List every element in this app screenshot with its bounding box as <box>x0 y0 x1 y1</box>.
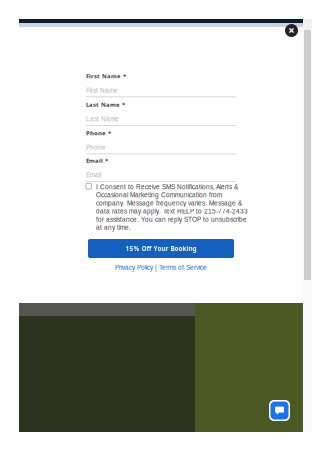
staticText: First Name * <box>86 72 126 80</box>
staticText: for assistance. You can reply STOP to un… <box>96 216 247 223</box>
button[interactable]: 15% Off Your Booking <box>88 239 234 258</box>
staticText: data rates may apply. Text HELP to 215-7… <box>96 208 248 215</box>
button[interactable]: Close <box>284 23 299 38</box>
staticText: Last Name * <box>86 100 125 108</box>
staticText: Privacy Policy <box>115 264 153 271</box>
staticText: Last Name <box>86 115 119 123</box>
staticText: I Consent to Receive SMS Notifications, … <box>96 183 238 191</box>
button[interactable]: Chat <box>269 400 290 421</box>
staticText: Email <box>86 171 101 179</box>
staticText: First Name <box>86 87 118 94</box>
staticText: | <box>153 264 159 271</box>
staticText: Email * <box>86 156 108 164</box>
button[interactable]: Terms of Service <box>159 264 207 271</box>
staticText: Phone * <box>86 129 111 137</box>
staticText: Phone <box>86 144 106 151</box>
staticText: Terms of Service <box>159 264 207 271</box>
staticText: company. Message frequency varies. Messa… <box>96 200 242 207</box>
staticText: Occasional Marketing Communication from <box>96 192 222 199</box>
staticText: 15% Off Your Booking <box>125 244 196 253</box>
button[interactable]: I Consent to Receive SMS Notifications, … <box>86 183 248 232</box>
staticText: at any time. <box>96 224 131 231</box>
button[interactable]: Privacy Policy <box>115 264 153 271</box>
